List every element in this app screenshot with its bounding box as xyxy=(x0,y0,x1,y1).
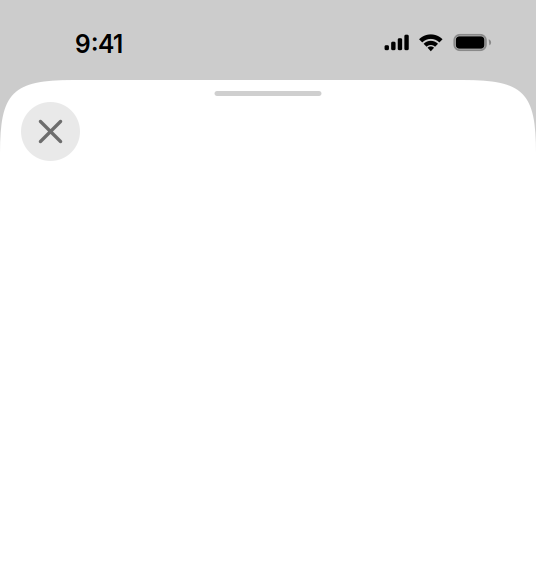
button[interactable]: Close xyxy=(21,102,80,161)
staticText: 9:41 xyxy=(75,29,123,59)
